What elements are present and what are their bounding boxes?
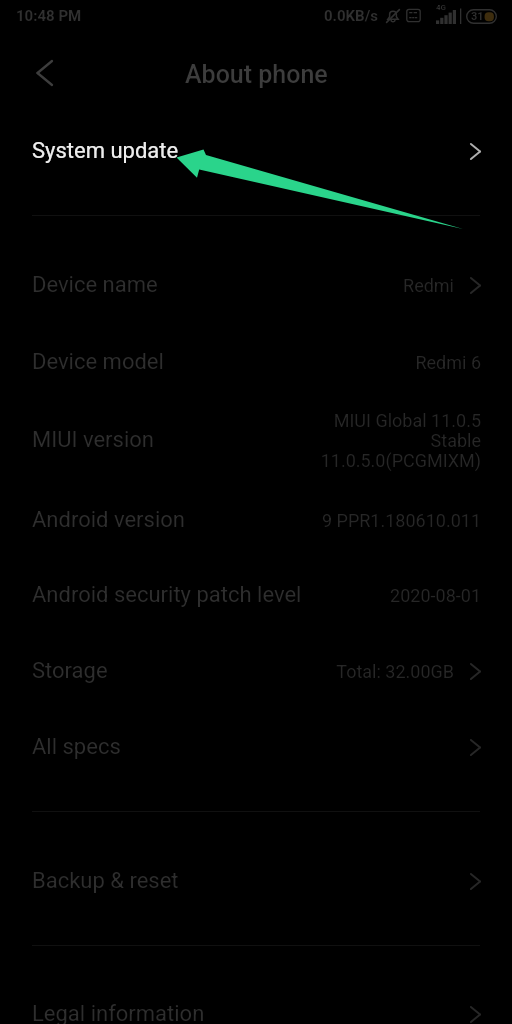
- button[interactable]: Android security patch level: [0, 566, 512, 624]
- button[interactable]: Backup & reset: [0, 852, 512, 910]
- staticText: Legal information: [32, 1001, 205, 1024]
- staticText: Redmi 6: [415, 352, 481, 373]
- staticText: Android version: [32, 507, 185, 533]
- staticText: 2020-08-01: [390, 585, 481, 606]
- staticText: Storage: [32, 658, 108, 684]
- button[interactable]: System update: [0, 122, 512, 180]
- staticText: Backup & reset: [32, 868, 179, 894]
- staticText: Android security patch level: [32, 582, 302, 608]
- button[interactable]: Back: [16, 45, 72, 101]
- staticText: Total: 32.00GB: [336, 661, 454, 682]
- staticText: 4G: [436, 3, 447, 12]
- staticText: Device model: [32, 349, 164, 375]
- button[interactable]: Android version: [0, 491, 512, 549]
- button[interactable]: Device name: [0, 256, 512, 314]
- staticText: 10:48 PM: [16, 7, 82, 25]
- button[interactable]: Legal information: [0, 985, 512, 1024]
- button[interactable]: All specs: [0, 718, 512, 776]
- button[interactable]: MIUI version: [0, 395, 512, 485]
- staticText: System update: [32, 138, 179, 164]
- button[interactable]: Storage: [0, 642, 512, 700]
- staticText: Device name: [32, 272, 158, 298]
- staticText: MIUI version: [32, 427, 154, 453]
- staticText: MIUI Global 11.0.5 Stable 11.0.5.0(PCGMI…: [320, 410, 481, 471]
- staticText: About phone: [185, 60, 328, 89]
- staticText: 0.0KB/s: [324, 7, 378, 25]
- staticText: 31: [471, 10, 484, 23]
- staticText: All specs: [32, 734, 121, 760]
- staticText: 9 PPR1.180610.011: [321, 510, 481, 531]
- button[interactable]: Device model: [0, 333, 512, 391]
- staticText: Redmi: [403, 275, 454, 296]
